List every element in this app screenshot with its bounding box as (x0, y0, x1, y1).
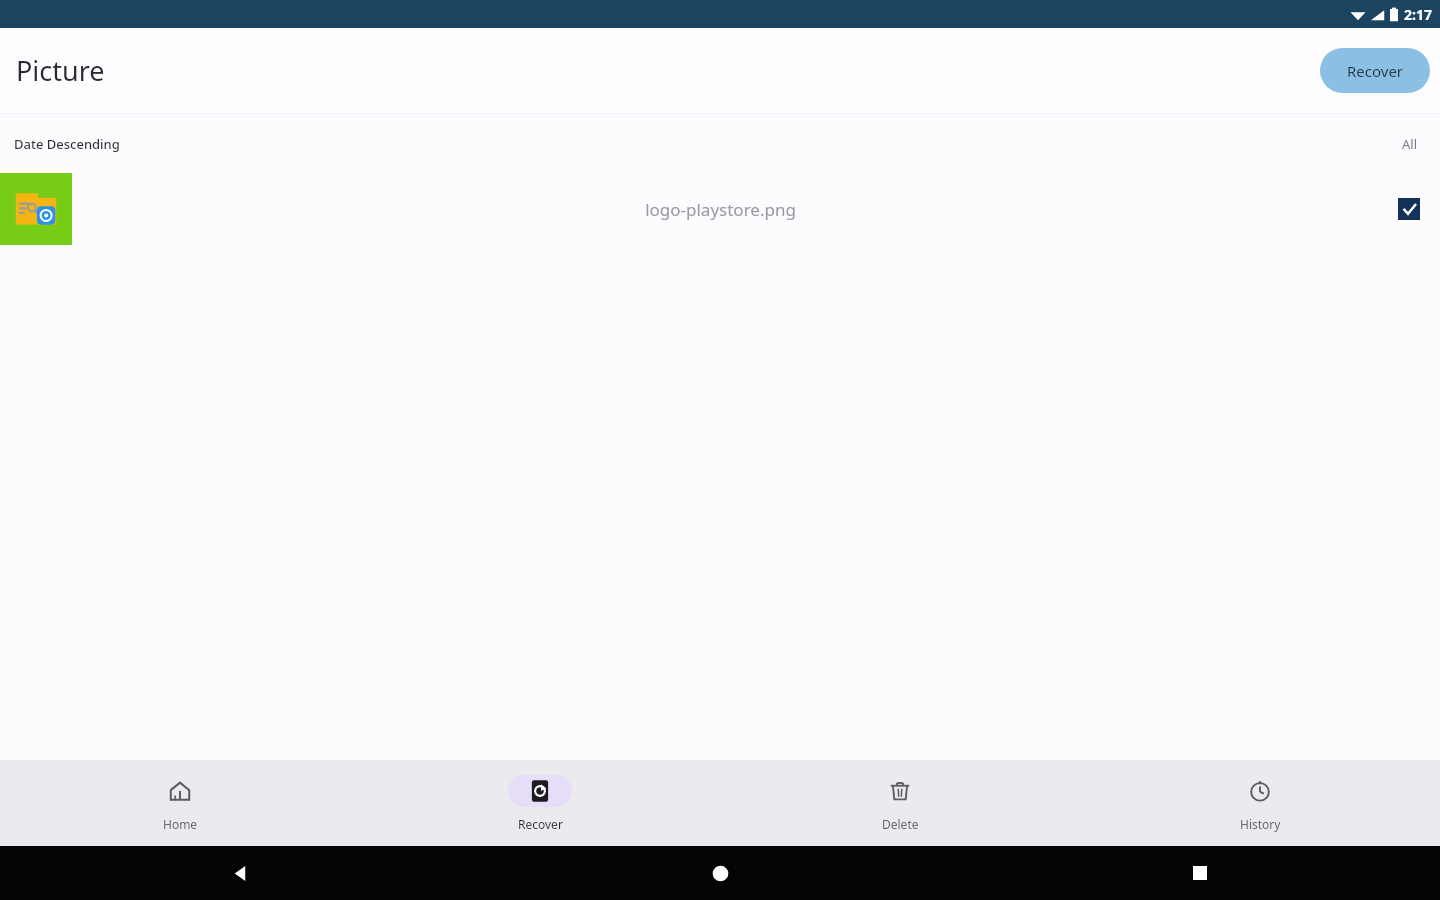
staticText: logo-playstore.png (645, 198, 796, 221)
button[interactable]: Delete (720, 760, 1080, 846)
button[interactable]: Home (0, 760, 360, 846)
button[interactable]: Recover (1320, 48, 1430, 93)
button[interactable]: All (1392, 129, 1440, 159)
staticText: Delete (882, 816, 919, 832)
staticText: Picture (16, 52, 105, 89)
staticText: Recover (1347, 61, 1404, 81)
button[interactable]: Select file (1398, 198, 1420, 220)
button[interactable]: logo-playstore.png (0, 173, 1440, 245)
staticText: History (1240, 816, 1281, 832)
button[interactable]: Recent apps (1183, 856, 1217, 890)
staticText: Home (163, 816, 198, 832)
button[interactable]: Home (703, 856, 737, 890)
staticText: Date Descending (14, 135, 120, 153)
button[interactable]: History (1080, 760, 1440, 846)
button[interactable]: Recover (360, 760, 720, 846)
button[interactable]: Date Descending (0, 129, 128, 159)
staticText: Recover (518, 816, 563, 832)
staticText: 2:17 (1404, 5, 1432, 24)
staticText: All (1402, 135, 1418, 153)
button[interactable]: Back (223, 856, 257, 890)
